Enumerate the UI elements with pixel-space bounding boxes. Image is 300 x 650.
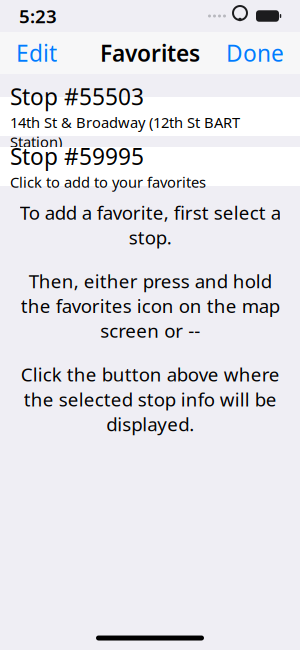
staticText: 14th St & Broadway (12th St BART Station… [10, 113, 240, 152]
staticText: Click the button above where the selecte… [20, 362, 279, 436]
staticText: Then, either press and hold the favorite… [20, 269, 279, 343]
staticText: To add a favorite, first select a stop. [19, 200, 280, 250]
staticText: Done [226, 38, 284, 68]
staticText: Edit [16, 38, 57, 68]
staticText: Stop #55503 [10, 81, 144, 112]
staticText: Stop #59995 [10, 141, 144, 171]
staticText: Click to add to your favorites [10, 172, 206, 192]
button[interactable]: Stop #55503 [0, 97, 300, 136]
staticText: Favorites [100, 38, 200, 68]
button[interactable]: Stop #59995 [0, 147, 300, 186]
button[interactable]: Edit [14, 32, 59, 74]
staticText: 5:23 [19, 4, 57, 28]
button[interactable]: Done [224, 32, 286, 74]
